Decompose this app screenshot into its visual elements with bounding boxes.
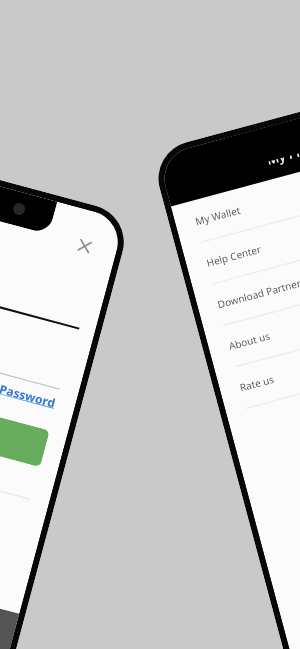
button[interactable]: Forgot Password <box>0 369 57 411</box>
button[interactable]: About us <box>204 261 300 372</box>
button[interactable]: Help Center <box>182 178 300 289</box>
button[interactable]: Rate us <box>215 302 300 413</box>
staticText: Forgot Password <box>0 369 57 411</box>
staticText: My Profile <box>265 135 300 169</box>
staticText: Help Center <box>205 242 263 270</box>
button[interactable] <box>0 369 50 467</box>
button[interactable]: Close <box>70 231 99 261</box>
staticText: My Wallet <box>194 203 242 228</box>
button[interactable]: My Wallet <box>171 136 300 247</box>
staticText: Rate us <box>238 372 276 394</box>
button[interactable]: Download Partner App <box>193 219 300 330</box>
staticText: About us <box>227 329 271 353</box>
staticText: Download Partner App <box>216 270 300 311</box>
